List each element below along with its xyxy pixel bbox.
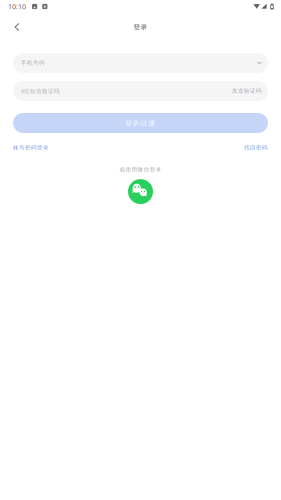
button[interactable]: 发送验证码 xyxy=(232,87,262,95)
button[interactable]: 登录/注册 xyxy=(13,113,268,133)
staticText: 登录/注册 xyxy=(125,118,155,128)
staticText: 或使用微信登录 xyxy=(119,166,161,173)
button[interactable]: 账号密码登录 xyxy=(13,144,49,151)
button[interactable]: Back xyxy=(0,17,34,37)
staticText: 10:10 xyxy=(8,2,26,11)
staticText: 找回密码 xyxy=(244,144,268,151)
button[interactable]: 找回密码 xyxy=(244,144,268,151)
staticText: 发送验证码 xyxy=(232,87,262,95)
staticText: 6位短信验证码 xyxy=(21,87,60,95)
staticText: 登录 xyxy=(133,23,147,31)
button[interactable]: 手机号码 xyxy=(13,53,268,73)
staticText: 手机号码 xyxy=(21,59,45,67)
button[interactable]: 使用微信登录 xyxy=(128,179,153,204)
staticText: 账号密码登录 xyxy=(13,144,49,151)
